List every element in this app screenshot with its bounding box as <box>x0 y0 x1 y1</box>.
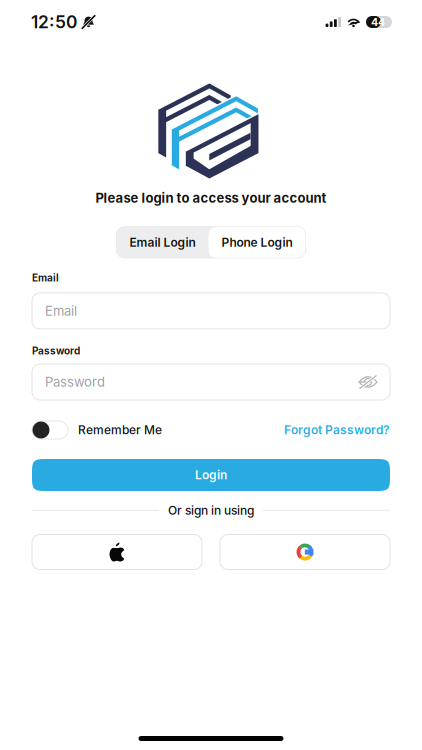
staticText: 44 <box>371 15 385 28</box>
staticText: Please login to access your account <box>95 190 326 206</box>
button[interactable]: Email Login <box>116 227 208 258</box>
staticText: Password <box>32 345 80 357</box>
staticText: Forgot Password? <box>284 423 390 437</box>
staticText: Password <box>45 374 105 390</box>
staticText: Phone Login <box>221 235 292 249</box>
staticText: Remember Me <box>78 423 162 437</box>
button[interactable]: Sign in with Google <box>220 534 390 569</box>
button[interactable]: Forgot Password? <box>284 423 390 437</box>
staticText: Or sign in using <box>168 503 254 517</box>
button[interactable]: Login <box>32 459 390 491</box>
button[interactable]: Remember Me <box>32 421 162 439</box>
staticText: Email <box>45 303 77 319</box>
button[interactable]: Sign in with Apple <box>32 534 202 569</box>
staticText: 12:50 <box>31 11 77 32</box>
staticText: Email Login <box>129 235 195 249</box>
staticText: Login <box>195 468 227 482</box>
button[interactable]: Phone Login <box>208 227 305 258</box>
staticText: Email <box>32 272 59 284</box>
